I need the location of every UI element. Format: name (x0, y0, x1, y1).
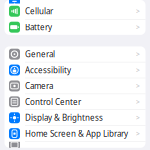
staticText: > (136, 66, 140, 74)
button[interactable]: More settings (4, 137, 145, 150)
staticText: > (136, 7, 140, 16)
staticText: > (136, 129, 140, 138)
staticText: Accessibility (25, 65, 71, 75)
button[interactable]: Display & Brightness (4, 110, 145, 126)
staticText: > (136, 97, 140, 106)
button[interactable]: Home Screen & App Library (4, 126, 145, 142)
staticText: Display & Brightness (25, 112, 103, 123)
button[interactable]: Camera (4, 78, 145, 94)
staticText: > (136, 113, 140, 122)
button[interactable]: Cellular (4, 3, 145, 19)
staticText: General (25, 49, 55, 59)
button[interactable]: Accessibility (4, 62, 145, 78)
button[interactable]: General (4, 46, 145, 62)
staticText: Cellular (25, 6, 53, 16)
staticText: Home Screen & App Library (25, 128, 128, 139)
staticText: Control Center (25, 96, 81, 107)
staticText: Battery (25, 22, 52, 32)
staticText: > (136, 50, 140, 59)
staticText: Camera (25, 81, 53, 91)
staticText: > (136, 23, 140, 32)
button[interactable]: Battery (4, 19, 145, 35)
staticText: > (136, 81, 140, 90)
button[interactable]: Wi‑Fi (4, 0, 145, 10)
button[interactable]: Control Center (4, 94, 145, 110)
